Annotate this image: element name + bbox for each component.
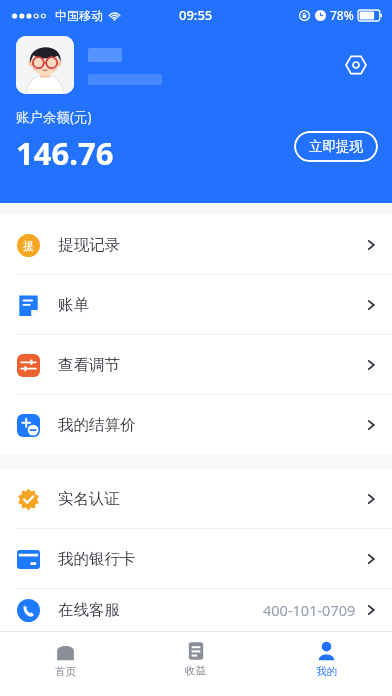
button[interactable]: 我的结算价 [0, 395, 392, 454]
staticText: 我的结算价 [58, 415, 136, 435]
button[interactable]: 首页 [0, 632, 130, 686]
button[interactable]: 立即提现 [294, 131, 378, 162]
button[interactable]: 账单 [0, 275, 392, 334]
staticText: 我的 [316, 665, 337, 678]
staticText: 在线客服 [58, 600, 120, 620]
staticText: 400-101-0709 [263, 600, 356, 620]
staticText: 查看调节 [58, 355, 120, 375]
staticText: 收益 [185, 664, 206, 677]
staticText: 78% [330, 7, 354, 23]
staticText: 账单 [58, 295, 89, 315]
button[interactable]: Settings [336, 45, 376, 85]
button[interactable]: 我的银行卡 [0, 529, 392, 588]
staticText: 账户余额(元) [16, 108, 92, 126]
button[interactable]: 提 [0, 215, 392, 274]
staticText: 中国移动 [55, 8, 103, 23]
button[interactable]: Avatar [16, 36, 74, 94]
button[interactable]: 收益 [130, 632, 261, 686]
staticText: 实名认证 [58, 489, 120, 509]
staticText: 提现记录 [58, 235, 120, 255]
button[interactable]: 查看调节 [0, 335, 392, 394]
staticText: 146.76 [16, 132, 114, 174]
button[interactable]: 我的 [261, 632, 392, 686]
button[interactable]: 实名认证 [0, 469, 392, 528]
staticText: 首页 [55, 665, 76, 678]
staticText: 提 [23, 239, 34, 253]
staticText: 我的银行卡 [58, 549, 136, 569]
staticText: 立即提现 [309, 138, 363, 155]
staticText: 09:55 [179, 6, 213, 24]
button[interactable]: 在线客服 [0, 589, 392, 631]
